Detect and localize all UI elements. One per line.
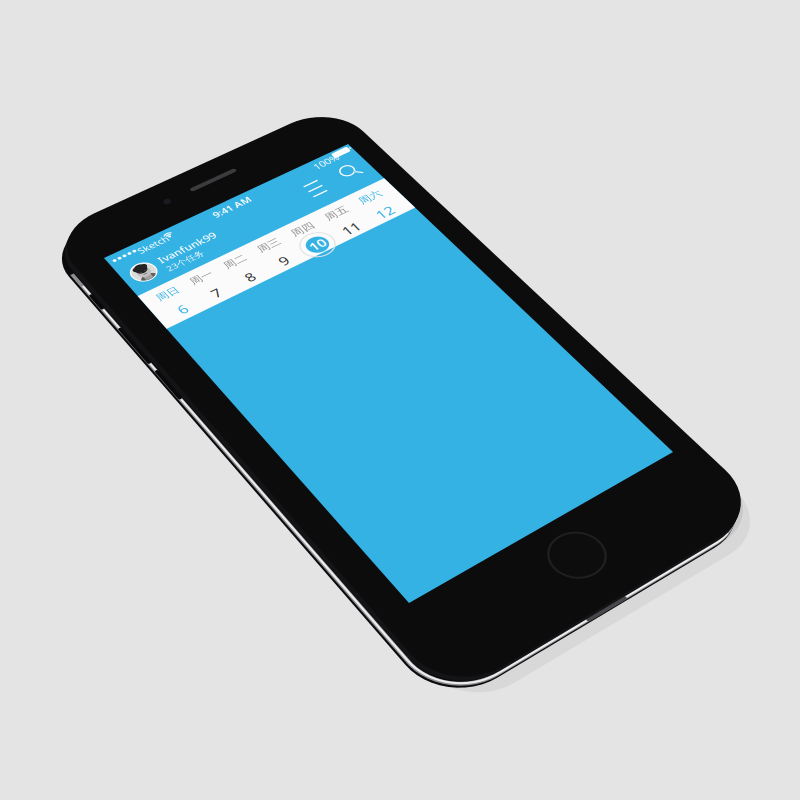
button[interactable]: 周六 (316, 84, 367, 154)
button[interactable]: 周四 (213, 84, 265, 154)
staticText: 11 (278, 123, 302, 151)
staticText: 12 (330, 123, 354, 151)
staticText: 10 (228, 124, 250, 150)
button[interactable]: 周五 (265, 84, 316, 154)
